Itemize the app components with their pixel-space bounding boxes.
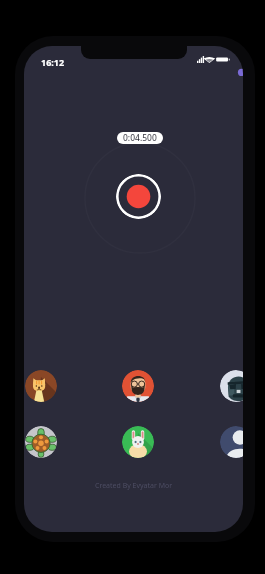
button[interactable]: Turtle xyxy=(25,426,57,458)
staticText: 0:04.500 xyxy=(123,132,157,144)
button[interactable]: Cat xyxy=(25,370,57,402)
button[interactable]: Record xyxy=(116,174,161,219)
button[interactable]: Rabbit xyxy=(122,426,154,458)
button[interactable]: Person xyxy=(122,370,154,402)
staticText: 16:12 xyxy=(41,56,65,68)
staticText: Created By Evyatar Mor xyxy=(95,481,173,491)
button[interactable]: Anonymous xyxy=(220,426,243,458)
button[interactable]: Vader xyxy=(220,370,243,402)
